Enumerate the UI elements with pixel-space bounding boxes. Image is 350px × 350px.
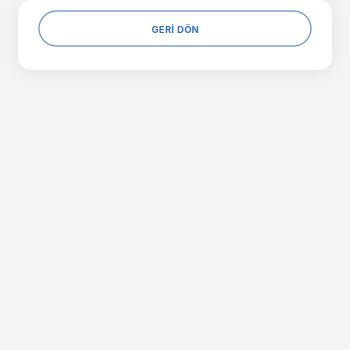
staticText: GERİ DÖN <box>151 24 199 35</box>
button[interactable]: GERİ DÖN <box>39 11 311 46</box>
